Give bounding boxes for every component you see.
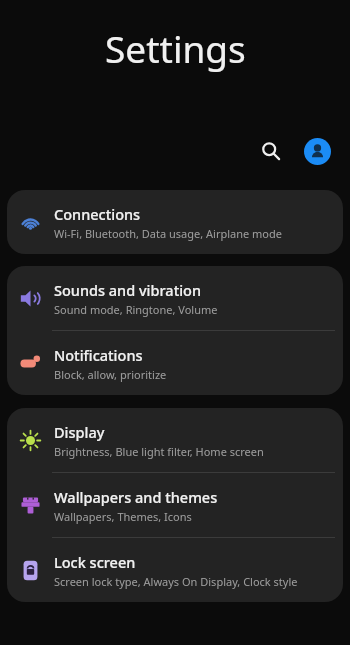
button[interactable]: Connections	[7, 190, 343, 254]
staticText: Wallpapers and themes	[54, 487, 218, 507]
staticText: Brightness, Blue light filter, Home scre…	[54, 444, 264, 459]
staticText: Wi-Fi, Bluetooth, Data usage, Airplane m…	[54, 226, 282, 241]
button[interactable]: Display	[7, 408, 343, 472]
staticText: Block, allow, prioritize	[54, 367, 167, 382]
staticText: Display	[54, 422, 105, 442]
staticText: Sounds and vibration	[54, 280, 202, 300]
staticText: Lock screen	[54, 552, 136, 572]
staticText: Wallpapers, Themes, Icons	[54, 509, 192, 524]
button[interactable]: Notifications	[7, 331, 343, 395]
button[interactable]: Lock screen	[7, 538, 343, 602]
button[interactable]: Account	[296, 130, 338, 172]
button[interactable]: Search	[250, 130, 292, 172]
staticText: Connections	[54, 204, 141, 224]
staticText: Screen lock type, Always On Display, Clo…	[54, 574, 298, 589]
button[interactable]: Wallpapers and themes	[7, 473, 343, 537]
staticText: Settings	[105, 23, 246, 73]
staticText: Sound mode, Ringtone, Volume	[54, 302, 218, 317]
staticText: Notifications	[54, 345, 143, 365]
button[interactable]: Sounds and vibration	[7, 266, 343, 330]
